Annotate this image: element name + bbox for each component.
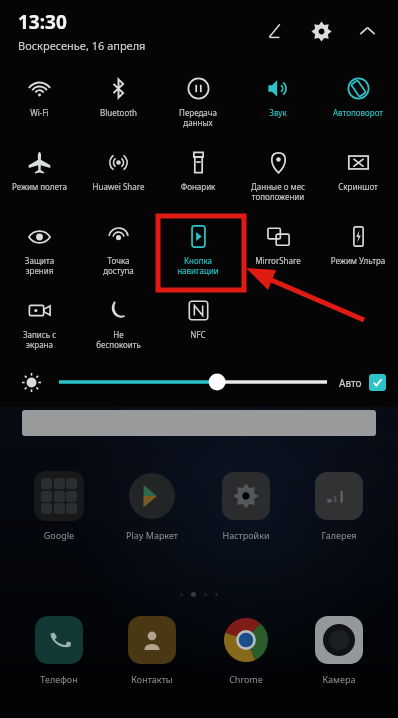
staticText: Не беспокоить — [81, 329, 156, 350]
button[interactable]: Режим Ультра — [318, 216, 398, 290]
staticText: Звук — [240, 107, 316, 118]
staticText: Контакты — [109, 673, 195, 685]
button[interactable]: Кнопка навигации — [158, 216, 238, 290]
button[interactable]: Точка доступа — [79, 216, 158, 290]
staticText: Точка доступа — [81, 255, 156, 276]
button[interactable]: Телефон — [16, 614, 102, 685]
button[interactable]: Скриншот — [318, 142, 398, 216]
staticText: Защита зрения — [2, 255, 77, 276]
staticText: Google — [16, 529, 102, 541]
button[interactable]: Bluetooth — [79, 68, 158, 142]
button[interactable]: Контакты — [109, 614, 195, 685]
button[interactable]: Автоповорот — [318, 68, 398, 142]
button[interactable]: Настройки — [203, 470, 289, 541]
staticText: Wi-Fi — [2, 107, 77, 118]
staticText: Автоповорот — [320, 107, 396, 118]
staticText: Воскресенье, 16 апреля — [18, 38, 146, 53]
button[interactable]: Search — [22, 410, 376, 436]
button[interactable]: Авто — [339, 374, 386, 391]
staticText: Данные о мес тоположении — [240, 181, 316, 202]
staticText: 13:30 — [18, 9, 67, 35]
button[interactable]: Collapse — [350, 14, 384, 48]
button[interactable]: Защита зрения — [0, 216, 79, 290]
staticText: NFC — [160, 329, 236, 340]
button[interactable]: Галерея — [296, 470, 382, 541]
staticText: Play Маркет — [109, 529, 195, 541]
button[interactable]: Фонарик — [158, 142, 238, 216]
button[interactable]: NFC — [158, 290, 238, 362]
button[interactable]: Данные о мес тоположении — [238, 142, 318, 216]
staticText: Настройки — [203, 529, 289, 541]
staticText: Камера — [296, 673, 382, 685]
staticText: MirrorShare — [240, 255, 316, 266]
button[interactable]: Wi-Fi — [0, 68, 79, 142]
button[interactable]: Chrome — [203, 614, 289, 685]
button[interactable]: Play Маркет — [109, 470, 195, 541]
staticText: Запись с экрана — [2, 329, 77, 350]
staticText: Кнопка навигации — [160, 255, 236, 276]
button[interactable]: Huawei Share — [79, 142, 158, 216]
staticText: Режим Ультра — [320, 255, 396, 266]
staticText: Bluetooth — [81, 107, 156, 118]
button[interactable]: MirrorShare — [238, 216, 318, 290]
staticText: Chrome — [203, 673, 289, 685]
button[interactable]: Звук — [238, 68, 318, 142]
staticText: Галерея — [296, 529, 382, 541]
button[interactable]: Settings — [304, 14, 338, 48]
staticText: Фонарик — [160, 181, 236, 192]
button[interactable]: Запись с экрана — [0, 290, 79, 362]
button[interactable]: Камера — [296, 614, 382, 685]
button[interactable]: Режим полета — [0, 142, 79, 216]
staticText: Передача данных — [160, 107, 236, 128]
button[interactable]: Передача данных — [158, 68, 238, 142]
button[interactable]: Google — [16, 470, 102, 541]
staticText: Huawei Share — [81, 181, 156, 192]
staticText: Скриншот — [320, 181, 396, 192]
button[interactable]: Brightness slider — [59, 370, 327, 394]
staticText: Авто — [339, 376, 362, 390]
button[interactable]: Не беспокоить — [79, 290, 158, 362]
button[interactable]: Edit — [258, 14, 292, 48]
staticText: Телефон — [16, 673, 102, 685]
staticText: Режим полета — [2, 181, 77, 192]
